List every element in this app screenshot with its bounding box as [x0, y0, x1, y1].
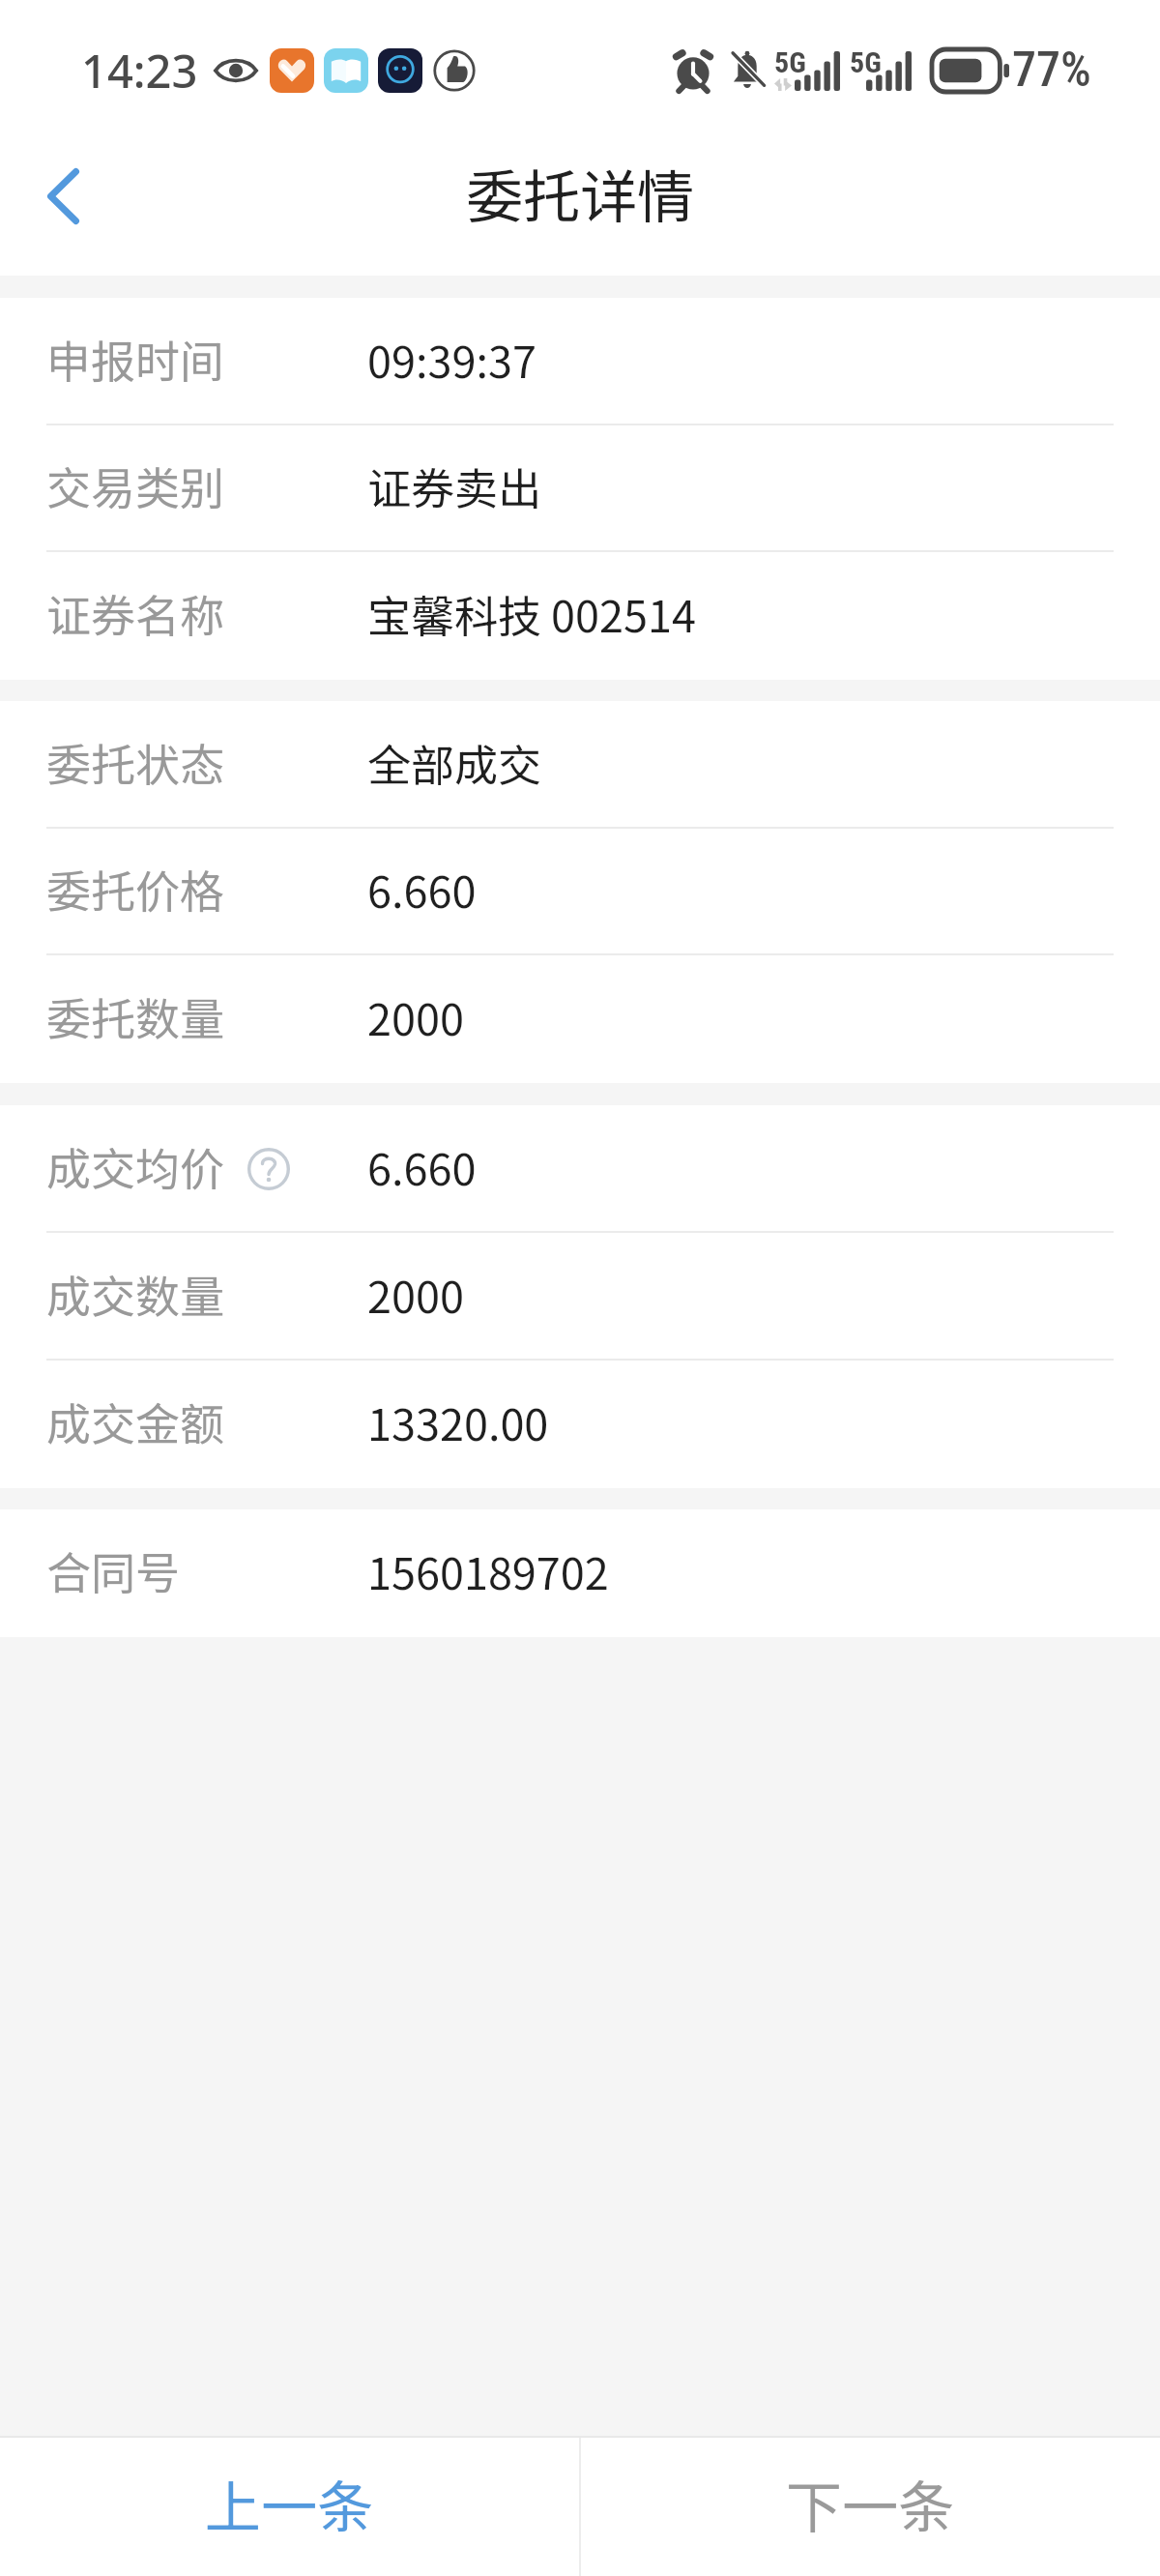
staticText: 5G — [774, 45, 806, 79]
staticText: 77% — [1012, 42, 1091, 99]
staticText: 下一条 — [786, 2463, 955, 2544]
button[interactable]: 交易类别 — [0, 425, 1160, 552]
button[interactable]: 成交数量 — [0, 1233, 1160, 1361]
staticText: 合同号 — [46, 1538, 180, 1603]
staticText: 成交金额 — [46, 1390, 224, 1454]
button[interactable]: 成交均价 — [0, 1105, 1160, 1233]
staticText: 申报时间 — [46, 327, 224, 392]
staticText: 交易类别 — [46, 454, 224, 518]
button[interactable]: 合同号 — [0, 1509, 1160, 1637]
button[interactable]: Help about average price — [247, 1148, 290, 1190]
staticText: 成交均价 — [46, 1134, 224, 1199]
button[interactable]: 委托价格 — [0, 829, 1160, 955]
staticText: 1560189702 — [367, 1539, 609, 1602]
staticText: 全部成交 — [367, 731, 542, 794]
staticText: 证券名称 — [46, 581, 224, 646]
staticText: 证券卖出 — [367, 454, 542, 517]
button[interactable]: Back — [5, 140, 121, 251]
button[interactable]: 委托数量 — [0, 955, 1160, 1083]
staticText: 委托详情 — [466, 152, 695, 234]
staticText: 成交数量 — [46, 1262, 224, 1327]
button[interactable]: 成交金额 — [0, 1361, 1160, 1488]
staticText: 宝馨科技 002514 — [367, 582, 696, 645]
button[interactable]: 上一条 — [0, 2438, 579, 2576]
button[interactable]: 证券名称 — [0, 552, 1160, 680]
staticText: 2000 — [367, 985, 464, 1048]
staticText: 5G — [850, 45, 882, 79]
staticText: 6.660 — [367, 858, 477, 921]
staticText: 委托数量 — [46, 984, 224, 1049]
staticText: 委托价格 — [46, 857, 224, 922]
staticText: 13320.00 — [367, 1390, 549, 1453]
button[interactable]: 申报时间 — [0, 298, 1160, 425]
staticText: 09:39:37 — [367, 328, 536, 391]
staticText: 6.660 — [367, 1135, 477, 1198]
staticText: 2000 — [367, 1263, 464, 1326]
staticText: 上一条 — [205, 2463, 374, 2544]
button[interactable]: 下一条 — [581, 2438, 1160, 2576]
staticText: 委托状态 — [46, 730, 224, 795]
button[interactable]: 委托状态 — [0, 701, 1160, 829]
staticText: 14:23 — [81, 40, 198, 102]
